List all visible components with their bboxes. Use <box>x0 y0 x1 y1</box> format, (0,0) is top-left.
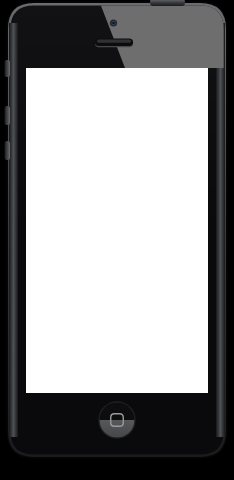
button[interactable]: Smartphone illustration <box>0 0 234 480</box>
